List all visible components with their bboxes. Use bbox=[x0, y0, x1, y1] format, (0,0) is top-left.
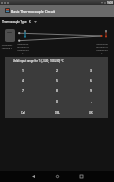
button[interactable]: 5 bbox=[40, 75, 74, 85]
staticText: Cal bbox=[21, 111, 25, 115]
staticText: 9:08 bbox=[107, 1, 113, 5]
staticText: DEL bbox=[55, 111, 60, 115]
button[interactable]: 0 bbox=[40, 96, 74, 107]
button[interactable]: 4 bbox=[5, 75, 40, 85]
button[interactable]: . bbox=[74, 96, 108, 107]
staticText: Measuring junction temperature T bbox=[96, 43, 108, 55]
button[interactable]: 9 bbox=[74, 85, 108, 96]
button[interactable]: OK bbox=[74, 107, 108, 118]
button[interactable]: DEL bbox=[40, 107, 74, 118]
staticText: Thermocouple Type: bbox=[2, 20, 27, 24]
staticText: Voltmeter reading V bbox=[1, 44, 13, 50]
button[interactable]: App icon bbox=[5, 8, 10, 13]
button[interactable]: 6 bbox=[74, 75, 108, 85]
button[interactable]: 1 bbox=[5, 65, 40, 75]
button[interactable]: Cal bbox=[5, 107, 40, 118]
button[interactable]: Select thermocouple type bbox=[29, 20, 37, 24]
button[interactable]: 7 bbox=[5, 85, 40, 96]
staticText: Basic Thermocouple Circuit bbox=[11, 9, 56, 14]
staticText: K bbox=[29, 20, 31, 24]
staticText: 7 bbox=[22, 88, 24, 93]
button[interactable]: Recent apps bbox=[76, 171, 86, 181]
button[interactable]: Back bbox=[28, 171, 38, 181]
staticText: 4 bbox=[22, 78, 24, 83]
staticText: Valid input range for T: [-0.00, 1830.00… bbox=[13, 59, 64, 63]
staticText: 9 bbox=[90, 88, 92, 93]
staticText: 3 bbox=[90, 68, 92, 73]
staticText: 2 bbox=[56, 68, 58, 73]
staticText: 5 bbox=[56, 78, 58, 83]
button[interactable]: 8 bbox=[40, 85, 74, 96]
staticText: 1 bbox=[22, 68, 24, 73]
staticText: Reference junction temperature T bbox=[17, 43, 29, 55]
staticText: OK bbox=[89, 111, 93, 115]
staticText: 6 bbox=[90, 78, 92, 83]
button[interactable]: 3 bbox=[74, 65, 108, 75]
button[interactable]: Home bbox=[52, 171, 62, 181]
staticText: 0 bbox=[56, 99, 58, 104]
button[interactable]: 2 bbox=[40, 65, 74, 75]
staticText: 8 bbox=[56, 88, 58, 93]
staticText: . bbox=[91, 99, 92, 104]
button[interactable]: Voltmeter bbox=[5, 29, 15, 42]
